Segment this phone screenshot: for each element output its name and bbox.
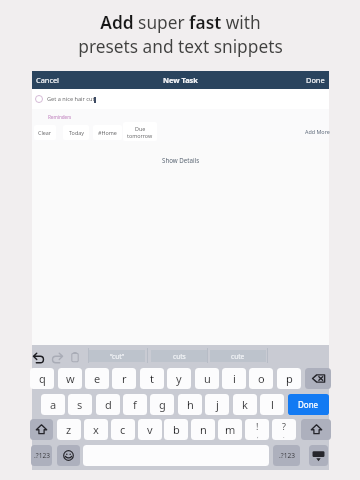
button[interactable]: Show Details <box>159 153 203 167</box>
button[interactable]: w <box>58 368 82 389</box>
button[interactable]: .?123 <box>31 445 52 466</box>
staticText: Due <box>135 125 146 132</box>
staticText: tomorrow <box>127 132 153 139</box>
button[interactable]: k <box>233 394 257 415</box>
button[interactable]: z <box>57 419 81 440</box>
staticText: m <box>225 422 236 437</box>
button[interactable]: cute <box>210 350 266 362</box>
staticText: e <box>94 371 101 386</box>
button[interactable]: s <box>68 394 92 415</box>
staticText: u <box>204 371 211 386</box>
staticText: p <box>286 371 293 386</box>
staticText: g <box>159 397 166 412</box>
button[interactable]: ? <box>272 419 296 440</box>
staticText: Add More <box>305 128 330 135</box>
button[interactable]: Undo <box>33 353 44 363</box>
staticText: d <box>105 397 112 412</box>
staticText: w <box>66 371 75 386</box>
button[interactable]: o <box>249 368 273 389</box>
staticText: Cancel <box>36 75 60 85</box>
staticText: #Home <box>98 129 117 136</box>
button[interactable]: Add More <box>303 126 332 137</box>
button[interactable]: Get a nice hair cut <box>32 89 329 109</box>
staticText: s <box>77 397 83 412</box>
staticText: Done <box>298 399 319 410</box>
staticText: . <box>283 432 285 440</box>
button[interactable]: h <box>178 394 202 415</box>
button[interactable]: x <box>84 419 108 440</box>
button[interactable]: r <box>112 368 136 389</box>
button[interactable]: Hide keyboard <box>309 445 328 466</box>
button[interactable]: j <box>205 394 229 415</box>
button[interactable]: Shift <box>301 419 331 440</box>
button[interactable]: t <box>140 368 164 389</box>
button[interactable]: y <box>167 368 191 389</box>
button[interactable]: v <box>138 419 162 440</box>
button[interactable]: g <box>150 394 174 415</box>
button[interactable]: l <box>260 394 284 415</box>
staticText: Get a nice hair cut <box>47 95 95 103</box>
button[interactable]: u <box>195 368 219 389</box>
button[interactable]: “cut” <box>89 350 145 362</box>
staticText: cuts <box>173 352 186 361</box>
staticText: z <box>66 422 72 437</box>
button[interactable]: a <box>41 394 65 415</box>
staticText: Add super fast with <box>100 11 261 35</box>
staticText: Today <box>69 129 84 136</box>
staticText: .?123 <box>34 451 50 460</box>
staticText: .?123 <box>279 451 295 460</box>
button[interactable]: Redo <box>52 353 63 363</box>
staticText: b <box>173 422 180 437</box>
staticText: Done <box>306 75 325 85</box>
button[interactable]: p <box>277 368 301 389</box>
button[interactable]: Emoji <box>57 445 80 466</box>
staticText: a <box>50 397 57 412</box>
button[interactable]: ! <box>245 419 269 440</box>
button[interactable]: m <box>218 419 242 440</box>
staticText: v <box>147 422 153 437</box>
staticText: , <box>257 432 259 440</box>
button[interactable]: cuts <box>151 350 207 362</box>
button[interactable]: Due <box>123 122 157 141</box>
staticText: l <box>271 397 274 412</box>
staticText: f <box>133 397 137 412</box>
staticText: Show Details <box>162 156 200 164</box>
button[interactable]: .?123 <box>273 445 300 466</box>
button[interactable]: b <box>164 419 188 440</box>
staticText: cute <box>231 352 245 361</box>
button[interactable]: c <box>111 419 135 440</box>
button[interactable]: n <box>191 419 215 440</box>
staticText: Clear <box>38 129 52 136</box>
staticText: y <box>176 371 182 386</box>
staticText: h <box>187 397 194 412</box>
button[interactable]: d <box>96 394 120 415</box>
button[interactable]: Backspace <box>305 368 331 389</box>
staticText: “cut” <box>110 352 125 361</box>
staticText: o <box>258 371 265 386</box>
button[interactable]: Done <box>288 394 329 415</box>
staticText: q <box>39 371 46 386</box>
button[interactable]: i <box>222 368 246 389</box>
staticText: ? <box>282 420 286 432</box>
button[interactable]: q <box>30 368 54 389</box>
button[interactable]: Done <box>302 75 329 85</box>
button[interactable]: f <box>123 394 147 415</box>
staticText: t <box>150 371 154 386</box>
button[interactable]: Cancel <box>32 75 64 85</box>
staticText: r <box>122 371 127 386</box>
staticText: i <box>233 371 236 386</box>
button[interactable]: Today <box>63 125 89 140</box>
staticText: ! <box>256 420 259 432</box>
button[interactable]: Shift <box>30 419 53 440</box>
button[interactable]: Paste <box>71 352 79 362</box>
staticText: New Task <box>163 75 198 85</box>
staticText: k <box>242 397 248 412</box>
staticText: presets and text snippets <box>78 35 283 59</box>
button[interactable]: e <box>85 368 109 389</box>
staticText: c <box>120 422 126 437</box>
staticText: x <box>93 422 99 437</box>
button[interactable]: #Home <box>93 125 122 140</box>
staticText: Reminders <box>48 114 72 120</box>
button[interactable]: Clear <box>34 125 56 140</box>
